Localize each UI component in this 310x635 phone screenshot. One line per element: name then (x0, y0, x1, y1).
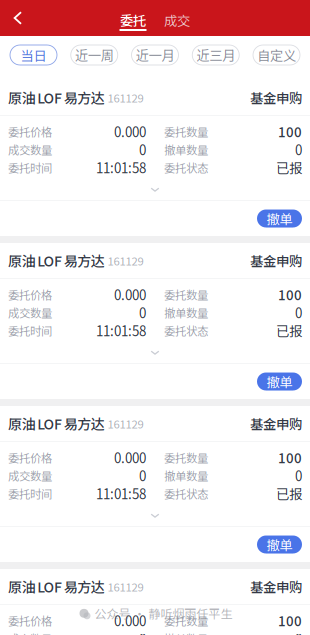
staticText: 公众号 · 静听烟雨任平生 (94, 605, 232, 622)
staticText: 委托价格 (8, 449, 52, 466)
staticText: 撤单数量 (164, 467, 208, 484)
staticText: 161129 (105, 252, 144, 269)
staticText: 基金申购 (250, 577, 302, 596)
staticText: 100 (278, 122, 302, 141)
staticText: 原油 LOF 易方达 (8, 87, 105, 108)
staticText: 100 (278, 611, 302, 630)
button[interactable]: 近一月 (131, 45, 178, 65)
button[interactable]: 撤单 (257, 209, 302, 227)
staticText: 撤单数量 (164, 304, 208, 321)
button[interactable]: 成交 (160, 11, 194, 34)
staticText: 委托状态 (164, 322, 208, 339)
staticText: 已报 (276, 484, 302, 503)
staticText: 0.000 (114, 122, 146, 141)
staticText: 0 (295, 140, 302, 159)
button[interactable]: 近三月 (192, 45, 239, 65)
staticText: 100 (278, 285, 302, 304)
staticText: 0 (295, 629, 302, 635)
staticText: 委托状态 (164, 485, 208, 502)
staticText: 11:01:58 (96, 321, 146, 340)
staticText: 0.000 (114, 285, 146, 304)
staticText: 0 (139, 629, 146, 635)
button[interactable]: 近一周 (71, 45, 118, 65)
staticText: 委托数量 (164, 612, 208, 629)
staticText: 近一月 (135, 45, 174, 65)
button[interactable]: 撤单 (257, 535, 302, 553)
staticText: 原油 LOF 易方达 (8, 250, 105, 271)
staticText: 0 (295, 303, 302, 322)
staticText: 0 (139, 303, 146, 322)
staticText: 基金申购 (250, 414, 302, 433)
staticText: 撤单 (266, 535, 292, 554)
staticText: 成交数量 (8, 141, 52, 158)
staticText: 近三月 (196, 45, 235, 65)
staticText: 成交数量 (8, 467, 52, 484)
staticText: 0 (295, 466, 302, 485)
staticText: 自定义 (257, 45, 296, 65)
staticText: 委托数量 (164, 449, 208, 466)
staticText: 委托价格 (8, 612, 52, 629)
staticText: 委托状态 (164, 159, 208, 176)
button[interactable]: 委托 (116, 11, 150, 34)
button[interactable]: 当日 (10, 45, 57, 65)
staticText: 委托时间 (8, 159, 52, 176)
staticText: 委托价格 (8, 123, 52, 140)
staticText: 委托数量 (164, 286, 208, 303)
staticText: 原油 LOF 易方达 (8, 576, 105, 597)
staticText: 委托价格 (8, 286, 52, 303)
staticText: 撤单 (266, 209, 292, 228)
staticText: 当日 (20, 45, 46, 65)
staticText: 撤单数量 (164, 141, 208, 158)
button[interactable]: 撤单 (257, 372, 302, 390)
staticText: 161129 (105, 415, 144, 432)
staticText: 委托时间 (8, 322, 52, 339)
staticText: 成交数量 (8, 630, 52, 635)
button[interactable]: Back (0, 0, 36, 36)
staticText: 0.000 (114, 611, 146, 630)
staticText: 11:01:58 (96, 484, 146, 503)
staticText: 原油 LOF 易方达 (8, 413, 105, 434)
staticText: 近一周 (75, 45, 114, 65)
staticText: 100 (278, 448, 302, 467)
staticText: 基金申购 (250, 251, 302, 270)
staticText: 161129 (105, 89, 144, 106)
staticText: 撤单数量 (164, 630, 208, 635)
staticText: 已报 (276, 321, 302, 340)
staticText: 161129 (105, 578, 144, 595)
staticText: 已报 (276, 158, 302, 177)
staticText: 撤单 (266, 372, 292, 391)
staticText: 11:01:58 (96, 158, 146, 177)
staticText: 0.000 (114, 448, 146, 467)
button[interactable]: 自定义 (253, 45, 300, 65)
staticText: 0 (139, 466, 146, 485)
staticText: 成交数量 (8, 304, 52, 321)
staticText: 0 (139, 140, 146, 159)
staticText: 成交 (164, 10, 190, 30)
staticText: 委托时间 (8, 485, 52, 502)
staticText: 委托 (120, 10, 146, 30)
staticText: 基金申购 (250, 88, 302, 107)
staticText: 委托数量 (164, 123, 208, 140)
